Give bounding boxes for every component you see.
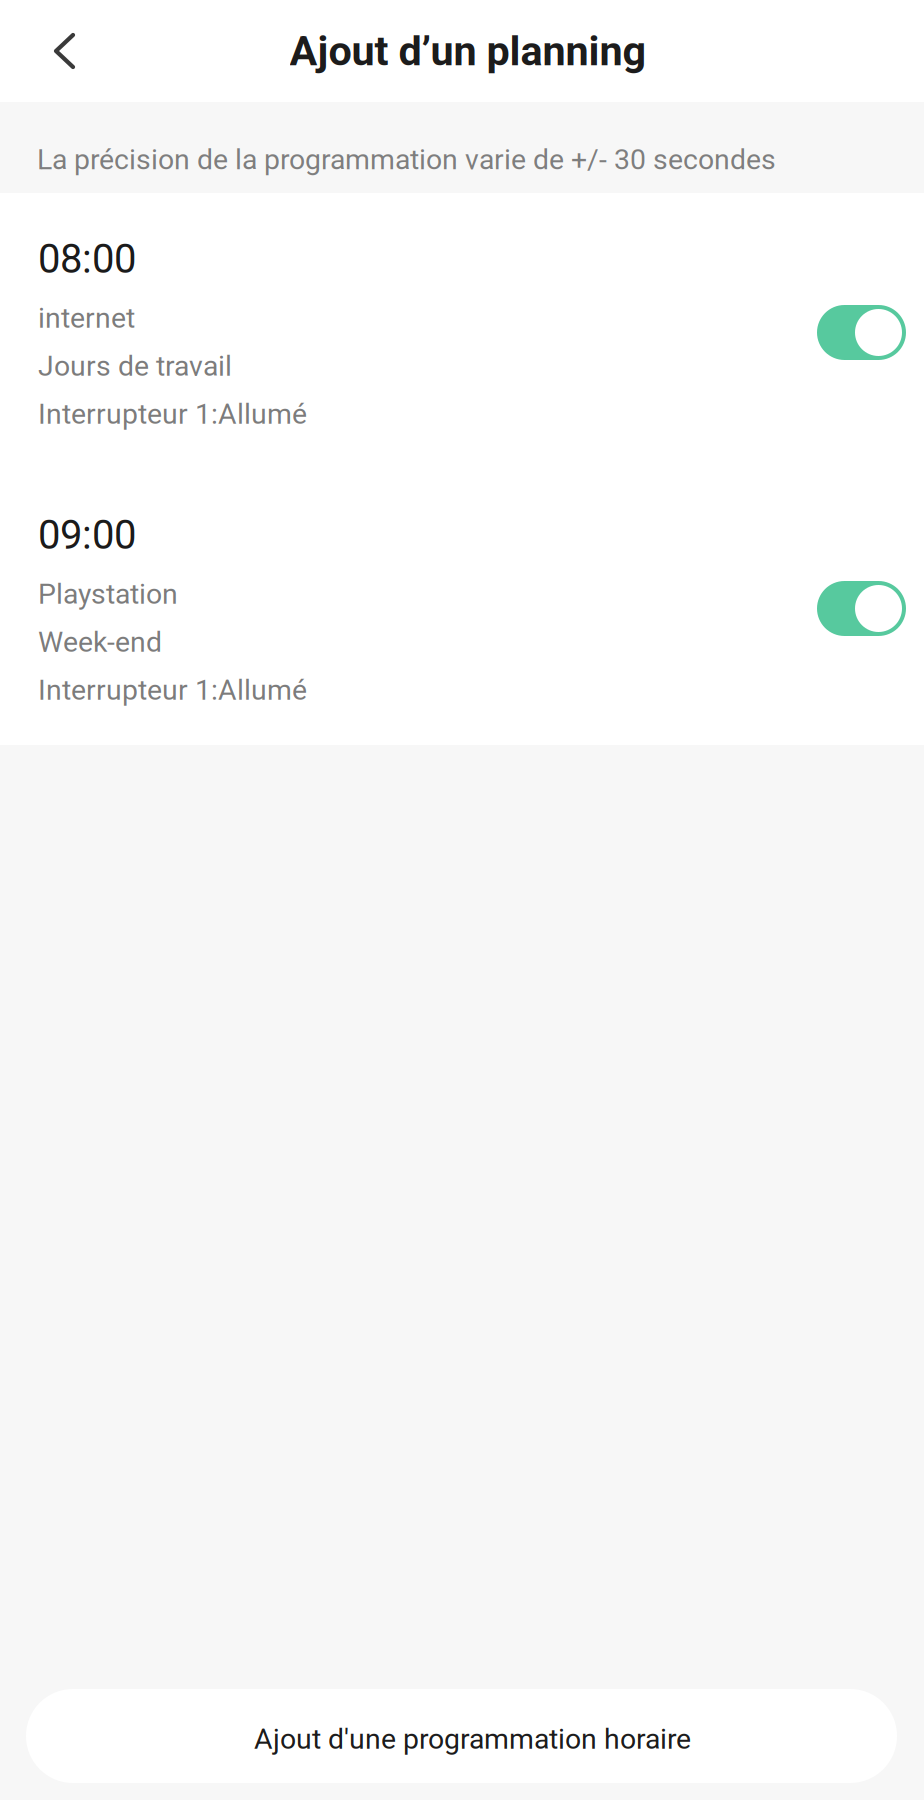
- staticText: 09:00: [38, 512, 136, 558]
- button[interactable]: internet schedule on: [799, 277, 924, 385]
- staticText: La précision de la programmation varie d…: [37, 143, 776, 176]
- button[interactable]: 09:00: [0, 469, 799, 745]
- staticText: Week-end: [38, 625, 162, 659]
- button[interactable]: Playstation schedule on: [799, 553, 924, 661]
- staticText: 08:00: [38, 236, 136, 282]
- staticText: Ajout d'une programmation horaire: [254, 1722, 691, 1756]
- staticText: Playstation: [38, 577, 178, 611]
- button[interactable]: Ajout d'une programmation horaire: [26, 1689, 897, 1783]
- staticText: Interrupteur 1:Allumé: [38, 673, 307, 707]
- staticText: internet: [38, 301, 135, 335]
- button[interactable]: Back: [0, 12, 106, 89]
- staticText: Interrupteur 1:Allumé: [38, 397, 307, 431]
- button[interactable]: 08:00: [0, 193, 799, 469]
- staticText: Jours de travail: [38, 349, 232, 383]
- staticText: Ajout d’un planning: [289, 27, 646, 75]
